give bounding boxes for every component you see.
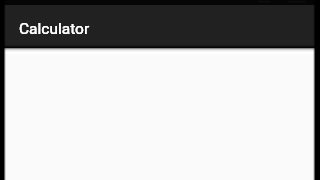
button[interactable]: Calculator app bar <box>4 5 315 48</box>
staticText: Calculator <box>19 20 90 38</box>
